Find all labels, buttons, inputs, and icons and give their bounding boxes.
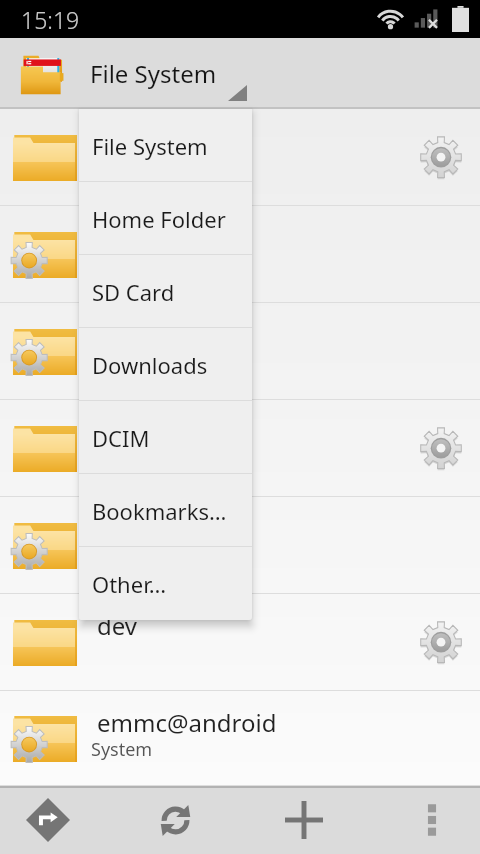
button[interactable]: Downloads xyxy=(79,328,252,401)
other: Properties xyxy=(420,622,462,664)
button[interactable]: emmc@android xyxy=(0,691,480,786)
staticText: acct xyxy=(97,124,143,157)
button[interactable]: SD Card xyxy=(79,255,252,328)
staticText: Bookmarks… xyxy=(92,496,227,526)
button[interactable]: Refresh xyxy=(136,786,216,854)
staticText: Home Folder xyxy=(92,204,226,234)
staticText: config xyxy=(97,318,168,351)
staticText: cache xyxy=(97,221,162,254)
button[interactable]: data xyxy=(0,400,480,497)
other: Properties xyxy=(420,428,462,470)
staticText: Downloads xyxy=(92,350,208,380)
button[interactable]: Home Folder xyxy=(79,182,252,255)
staticText: dbus xyxy=(97,512,153,545)
button[interactable]: DCIM xyxy=(79,401,252,474)
staticText: 15:19 xyxy=(21,4,80,35)
button[interactable]: dev xyxy=(0,594,480,691)
staticText: File System xyxy=(90,57,217,90)
button[interactable]: File System xyxy=(0,38,480,109)
button[interactable]: dbus xyxy=(0,497,480,594)
staticText: File System xyxy=(92,131,208,161)
staticText: System xyxy=(91,737,153,762)
staticText: SD Card xyxy=(92,277,175,307)
staticText: data xyxy=(97,415,148,448)
staticText: dev xyxy=(97,609,138,642)
other: Properties xyxy=(420,137,462,179)
button[interactable]: More options xyxy=(392,786,472,854)
button[interactable]: Add xyxy=(264,786,344,854)
staticText: DCIM xyxy=(92,423,150,453)
button[interactable]: Other… xyxy=(79,547,252,620)
staticText: Other… xyxy=(92,569,167,599)
button[interactable]: File System xyxy=(79,109,252,182)
button[interactable]: Bookmarks… xyxy=(79,474,252,547)
staticText: emmc@android xyxy=(97,706,277,739)
button[interactable]: config xyxy=(0,303,480,400)
button[interactable]: acct xyxy=(0,109,480,206)
button[interactable]: Go to path xyxy=(8,786,88,854)
button[interactable]: cache xyxy=(0,206,480,303)
